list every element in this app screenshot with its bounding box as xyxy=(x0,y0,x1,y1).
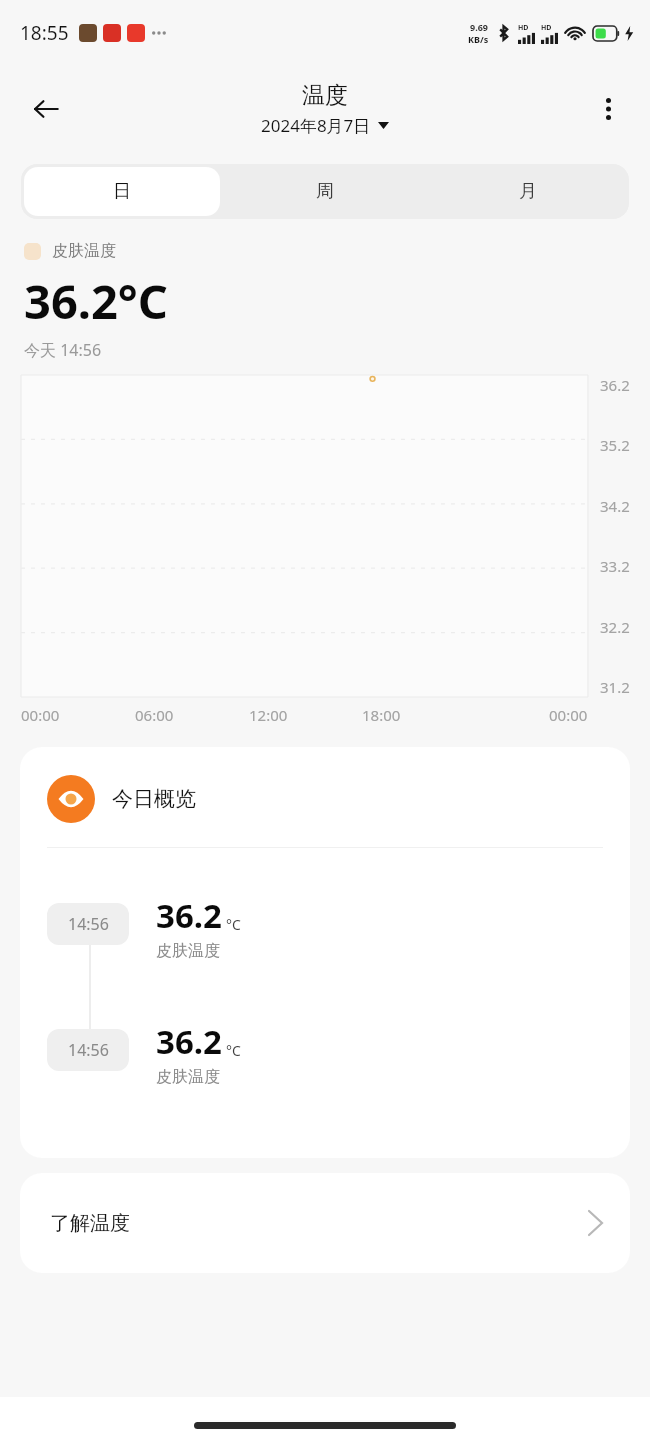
staticText: 18:00 xyxy=(362,705,401,725)
staticText: 周 xyxy=(316,180,334,203)
staticText: 06:00 xyxy=(135,705,174,725)
staticText: 33.2 xyxy=(600,556,630,576)
button[interactable]: 今日概览 xyxy=(47,775,630,823)
button[interactable]: Back xyxy=(22,85,70,133)
staticText: HD xyxy=(541,23,552,33)
staticText: 9.69 xyxy=(470,21,488,33)
staticText: 了解温度 xyxy=(50,1211,130,1236)
staticText: 14:56 xyxy=(68,1039,109,1061)
staticText: 00:00 xyxy=(21,705,60,725)
staticText: °C xyxy=(226,1041,241,1060)
staticText: HD xyxy=(518,23,529,33)
button[interactable]: 14:56 xyxy=(47,893,630,961)
button[interactable]: 了解温度 xyxy=(20,1173,630,1273)
staticText: 今日概览 xyxy=(112,786,196,812)
staticText: 温度 xyxy=(302,81,348,110)
staticText: 日 xyxy=(113,180,131,203)
staticText: 32.2 xyxy=(600,617,630,637)
staticText: 36.2 xyxy=(156,1019,222,1064)
staticText: 36.2 xyxy=(600,375,630,395)
button[interactable]: More options xyxy=(586,87,630,131)
staticText: 31.2 xyxy=(600,677,630,697)
button[interactable]: 日 xyxy=(24,167,220,216)
staticText: 36.2 xyxy=(156,893,222,938)
staticText: °C xyxy=(226,915,241,934)
staticText: 14:56 xyxy=(68,913,109,935)
staticText: 36.2°C xyxy=(24,269,168,333)
staticText: 皮肤温度 xyxy=(156,1067,220,1087)
staticText: 34.2 xyxy=(600,496,630,516)
staticText: 12:00 xyxy=(249,705,288,725)
staticText: 皮肤温度 xyxy=(156,941,220,961)
staticText: 00:00 xyxy=(549,705,588,725)
staticText: 2024年8月7日 xyxy=(261,114,371,137)
staticText: 18:55 xyxy=(20,20,69,46)
staticText: 今天 14:56 xyxy=(24,339,102,361)
button[interactable]: 月 xyxy=(426,164,629,219)
button[interactable]: 14:56 xyxy=(47,1019,630,1087)
button[interactable]: 2024年8月7日 xyxy=(258,113,392,138)
button[interactable]: 周 xyxy=(223,164,426,219)
staticText: 皮肤温度 xyxy=(52,241,116,261)
staticText: 月 xyxy=(519,180,537,203)
staticText: 35.2 xyxy=(600,435,630,455)
staticText: KB/s xyxy=(468,33,489,45)
